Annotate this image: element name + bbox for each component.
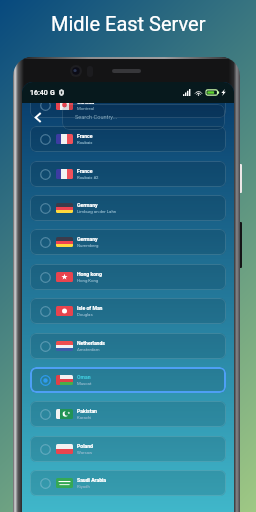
- staticText: Warsaw: [77, 450, 93, 455]
- button[interactable]: France: [30, 126, 226, 152]
- staticText: Hong Kong: [77, 278, 99, 283]
- staticText: Riyadh: [77, 484, 90, 489]
- button[interactable]: Canada: [30, 92, 226, 118]
- staticText: Muscat: [77, 381, 92, 386]
- staticText: Limburg an der Lahn: [77, 209, 117, 214]
- button[interactable]: Isle of Man: [30, 298, 226, 324]
- staticText: Saudi Arabia: [77, 477, 107, 483]
- staticText: France: [77, 168, 93, 174]
- staticText: Search Country...: [75, 114, 118, 121]
- button[interactable]: Search Country...: [62, 104, 225, 130]
- staticText: France: [77, 133, 93, 139]
- staticText: Midle East Server: [51, 12, 206, 35]
- button[interactable]: Hong kong: [30, 264, 226, 290]
- staticText: Oman: [77, 374, 91, 380]
- staticText: Germany: [77, 236, 98, 242]
- staticText: Isle of Man: [77, 305, 103, 311]
- button[interactable]: Germany: [30, 195, 226, 221]
- staticText: 16:40: [30, 89, 48, 97]
- staticText: Pakistan: [77, 408, 97, 414]
- staticText: Poland: [77, 443, 93, 449]
- button[interactable]: Oman: [30, 367, 226, 393]
- staticText: Roubaix #2: [77, 175, 99, 180]
- staticText: Amsterdam: [77, 347, 100, 352]
- staticText: G: [50, 89, 55, 97]
- staticText: Douglas: [77, 312, 93, 317]
- button[interactable]: Saudi Arabia: [30, 470, 226, 496]
- button[interactable]: Back: [27, 104, 48, 130]
- button[interactable]: Germany: [30, 229, 226, 255]
- staticText: Roubaix: [77, 140, 93, 145]
- button[interactable]: Netherlands: [30, 333, 226, 359]
- staticText: Hong kong: [77, 271, 102, 277]
- staticText: Netherlands: [77, 340, 105, 346]
- button[interactable]: Pakistan: [30, 401, 226, 427]
- staticText: Karachi: [77, 415, 92, 420]
- staticText: Germany: [77, 202, 98, 208]
- button[interactable]: Poland: [30, 436, 226, 462]
- staticText: Canada: [77, 99, 95, 105]
- staticText: Nuremberg: [77, 243, 99, 248]
- button[interactable]: France: [30, 161, 226, 187]
- staticText: Montreal: [77, 106, 95, 111]
